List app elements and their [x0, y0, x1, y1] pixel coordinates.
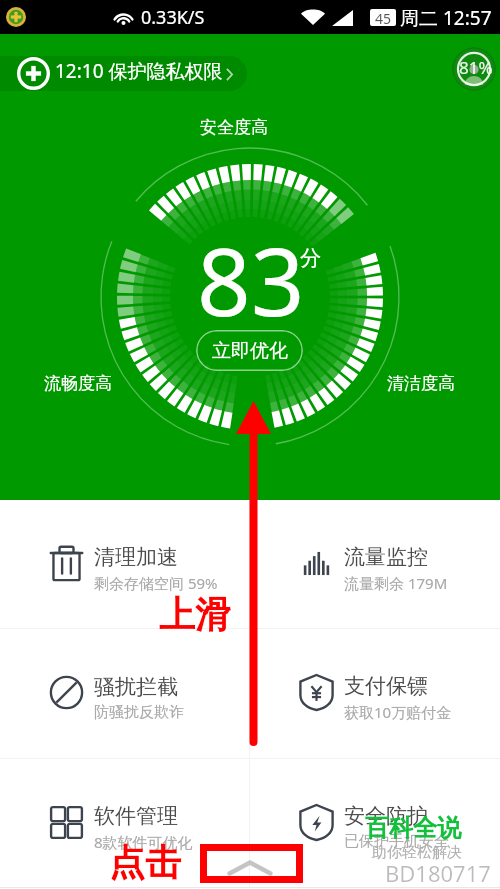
staticText: 百科全说 — [365, 813, 461, 843]
staticText: 分 — [300, 245, 321, 271]
staticText: 立即优化 — [212, 339, 288, 363]
button[interactable]: 流量监控 — [250, 500, 500, 628]
staticText: 流畅度高 — [44, 373, 112, 394]
staticText: 防骚扰反欺诈 — [94, 703, 184, 722]
staticText: 剩余存储空间 59% — [94, 573, 218, 593]
staticText: 安全度高 — [200, 117, 268, 138]
button[interactable]: Account — [452, 47, 496, 91]
button[interactable]: 支付保镖 — [250, 629, 500, 758]
staticText: 83 — [197, 216, 305, 344]
staticText: 安全防护 — [344, 803, 428, 829]
staticText: 已保护手机安全 — [344, 832, 449, 851]
button[interactable]: 立即优化 — [196, 330, 303, 371]
staticText: BD180717 — [385, 858, 491, 888]
staticText: 骚扰拦截 — [94, 674, 178, 700]
staticText: 点击 — [109, 840, 181, 885]
staticText: 45 — [375, 9, 392, 26]
button[interactable]: 软件管理 — [0, 759, 249, 887]
staticText: 上滑 — [159, 592, 231, 637]
staticText: 周二 12:57 — [400, 5, 492, 31]
button[interactable]: 清理加速 — [0, 500, 249, 628]
staticText: 支付保镖 — [344, 673, 428, 699]
staticText: 流量监控 — [344, 544, 428, 570]
button[interactable] — [0, 56, 247, 91]
staticText: 12:10 保护隐私权限 — [55, 58, 223, 84]
staticText: 获取10万赔付金 — [344, 702, 452, 722]
staticText: 软件管理 — [94, 803, 178, 829]
button[interactable]: 安全防护 — [250, 759, 500, 887]
button[interactable]: 骚扰拦截 — [0, 629, 249, 758]
staticText: 81% — [459, 56, 493, 79]
staticText: 0.33K/S — [141, 5, 205, 30]
staticText: 助你轻松解决 — [372, 843, 462, 862]
staticText: 流量剩余 179M — [344, 573, 448, 593]
staticText: 清洁度高 — [387, 373, 455, 394]
staticText: 8款软件可优化 — [94, 832, 193, 852]
staticText: 清理加速 — [94, 544, 178, 570]
